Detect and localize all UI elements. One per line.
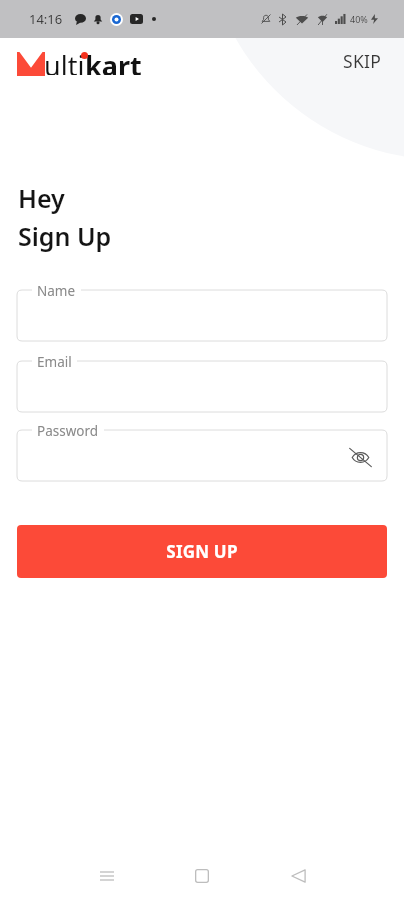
button[interactable]: Home xyxy=(182,856,222,896)
staticText: 40% xyxy=(350,13,368,25)
staticText: SIGN UP xyxy=(166,540,238,563)
button[interactable]: ulti xyxy=(17,47,147,75)
staticText: Sign Up xyxy=(18,219,112,253)
staticText: kart xyxy=(85,47,142,75)
staticText: Password xyxy=(37,422,99,440)
staticText: Hey xyxy=(18,181,65,215)
staticText: 14:16 xyxy=(29,10,63,28)
button[interactable]: Toggle password visibility xyxy=(345,442,375,472)
button[interactable]: SKIP xyxy=(335,41,390,81)
staticText: Email xyxy=(37,353,72,371)
button[interactable]: SIGN UP xyxy=(17,525,387,578)
staticText: Name xyxy=(37,282,76,300)
staticText: ulti xyxy=(44,47,85,75)
button[interactable]: Recent apps xyxy=(87,856,127,896)
button[interactable]: Back xyxy=(278,856,318,896)
staticText: SKIP xyxy=(343,49,382,73)
